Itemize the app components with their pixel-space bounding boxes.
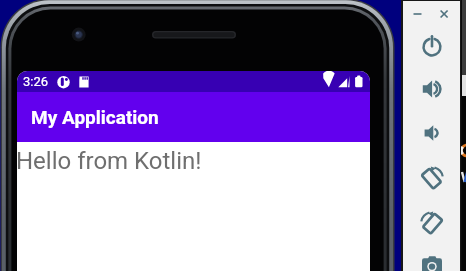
- button[interactable]: Power: [417, 32, 447, 62]
- staticText: Hello from Kotlin!: [17, 147, 202, 175]
- button[interactable]: Minimize: [409, 4, 430, 25]
- staticText: My Application: [31, 106, 159, 128]
- button[interactable]: Rotate right: [417, 209, 447, 239]
- staticText: 3:26: [23, 74, 49, 89]
- button[interactable]: Take screenshot: [417, 247, 447, 271]
- button[interactable]: Rotate left: [417, 164, 447, 194]
- button[interactable]: Volume up: [417, 75, 447, 105]
- button[interactable]: Close: [434, 4, 455, 25]
- button[interactable]: My Application: [17, 92, 370, 142]
- button[interactable]: Volume down: [417, 119, 447, 149]
